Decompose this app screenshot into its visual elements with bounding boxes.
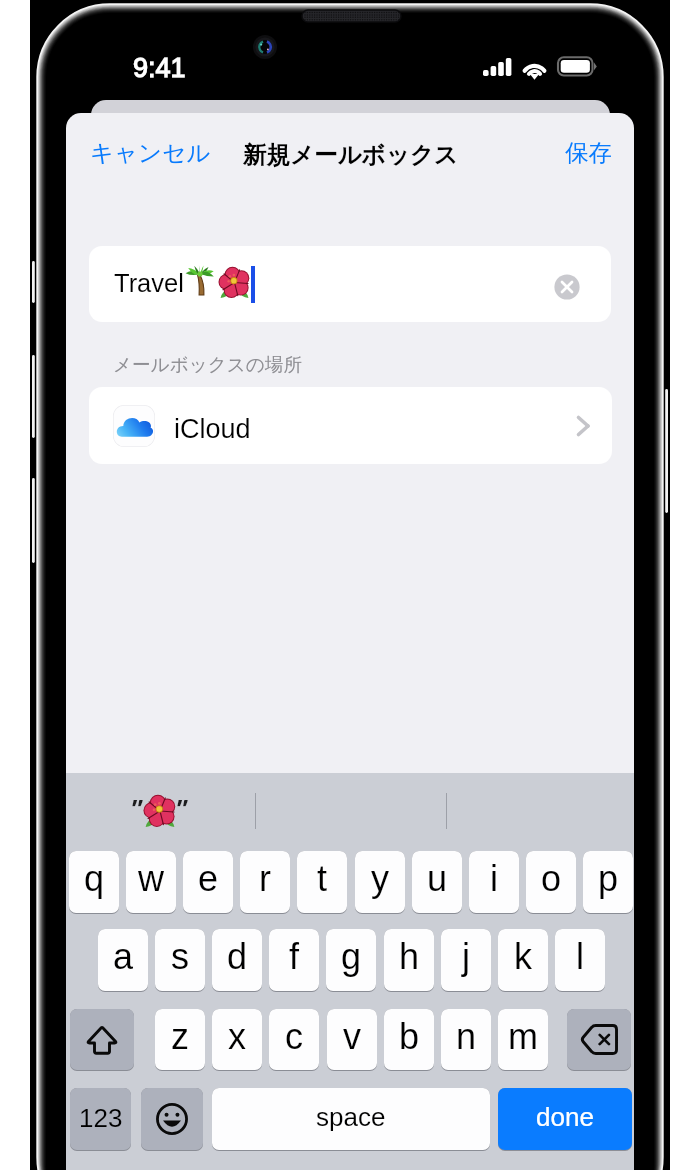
staticText: ” — [132, 791, 144, 825]
staticText: 123 — [79, 1103, 123, 1132]
staticText: v — [343, 1016, 361, 1056]
button[interactable]: n — [441, 1009, 491, 1070]
staticText: y — [371, 858, 389, 898]
staticText: キャンセル — [90, 138, 211, 168]
staticText: ” — [177, 791, 189, 825]
button[interactable]: y — [355, 851, 405, 913]
button[interactable]: w — [126, 851, 176, 913]
staticText: 保存 — [565, 138, 612, 168]
button[interactable]: d — [212, 929, 262, 991]
button[interactable]: f — [269, 929, 319, 991]
staticText: q — [84, 858, 105, 898]
button[interactable]: Backspace — [567, 1009, 631, 1070]
button[interactable]: Clear text — [553, 273, 581, 301]
button[interactable]: r — [240, 851, 290, 913]
staticText: Travel — [114, 269, 184, 297]
staticText: d — [227, 936, 248, 976]
staticText: h — [399, 936, 420, 976]
button[interactable]: 123 — [70, 1088, 131, 1150]
button[interactable]: u — [412, 851, 462, 913]
staticText: u — [427, 858, 448, 898]
staticText: t — [317, 858, 328, 898]
button[interactable]: x — [212, 1009, 262, 1070]
staticText: メールボックスの場所 — [113, 353, 302, 376]
staticText: n — [456, 1016, 477, 1056]
button[interactable]: q — [69, 851, 119, 913]
button[interactable]: j — [441, 929, 491, 991]
button[interactable]: g — [326, 929, 376, 991]
staticText: 9:41 — [133, 53, 186, 83]
button[interactable]: p — [583, 851, 633, 913]
button[interactable]: a — [98, 929, 148, 991]
button[interactable]: e — [183, 851, 233, 913]
staticText: e — [198, 858, 219, 898]
button[interactable]: Shift — [70, 1009, 134, 1070]
staticText: 新規メールボックス — [243, 140, 458, 170]
button[interactable]: v — [327, 1009, 377, 1070]
button[interactable]: iCloud — [89, 387, 612, 464]
button[interactable]: t — [297, 851, 347, 913]
button[interactable]: h — [384, 929, 434, 991]
staticText: f — [289, 936, 300, 976]
button[interactable]: o — [526, 851, 576, 913]
staticText: done — [536, 1102, 594, 1131]
staticText: g — [341, 936, 362, 976]
staticText: w — [138, 858, 164, 898]
staticText: a — [113, 936, 134, 976]
staticText: space — [316, 1102, 386, 1131]
staticText: m — [508, 1016, 538, 1056]
staticText: c — [285, 1016, 303, 1056]
button[interactable]: m — [498, 1009, 548, 1070]
staticText: z — [171, 1016, 189, 1056]
button[interactable]: i — [469, 851, 519, 913]
staticText: l — [576, 936, 584, 976]
staticText: o — [541, 858, 562, 898]
staticText: b — [399, 1016, 420, 1056]
button[interactable]: z — [155, 1009, 205, 1070]
staticText: x — [228, 1016, 246, 1056]
staticText: i — [490, 858, 498, 898]
button[interactable]: space — [212, 1088, 490, 1150]
button[interactable]: Emoji keyboard — [141, 1088, 203, 1150]
staticText: iCloud — [174, 414, 251, 444]
button[interactable]: 保存 — [553, 129, 624, 177]
staticText: j — [462, 936, 470, 976]
button[interactable]: done — [498, 1088, 632, 1150]
button[interactable]: l — [555, 929, 605, 991]
staticText: s — [171, 936, 189, 976]
button[interactable]: s — [155, 929, 205, 991]
staticText: r — [259, 858, 271, 898]
staticText: k — [514, 936, 532, 976]
button[interactable]: キャンセル — [78, 129, 223, 177]
button[interactable]: k — [498, 929, 548, 991]
button[interactable]: b — [384, 1009, 434, 1070]
staticText: p — [598, 858, 619, 898]
button[interactable]: c — [269, 1009, 319, 1070]
button[interactable]: Travel — [89, 246, 611, 322]
